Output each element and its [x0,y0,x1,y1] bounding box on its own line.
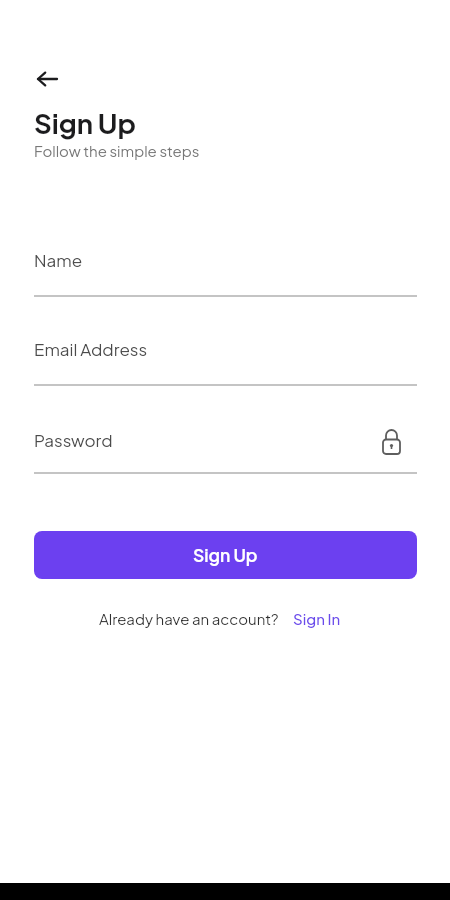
button[interactable]: Sign In [293,609,341,628]
staticText: Follow the simple steps [34,141,200,160]
staticText: Email Address [34,338,148,359]
button[interactable]: Sign Up [34,531,417,579]
button[interactable] [27,59,67,99]
staticText: Sign Up [193,544,258,566]
staticText: Sign In [293,609,341,628]
staticText: Already have an account? [99,609,279,628]
staticText: Name [34,249,83,270]
staticText: Sign Up [34,105,137,140]
staticText: Password [34,429,113,450]
